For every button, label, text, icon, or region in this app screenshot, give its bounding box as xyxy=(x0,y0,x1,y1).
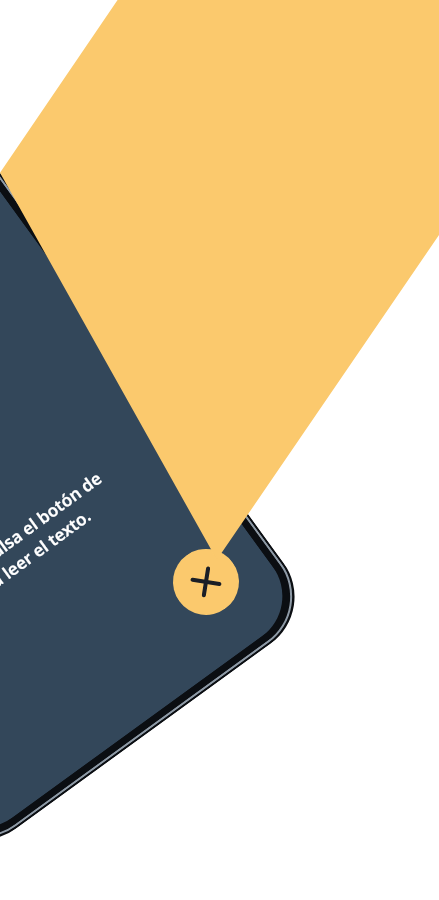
staticText: Toca la pantalla o pulsa el botón de rep… xyxy=(0,467,120,676)
button[interactable]: Banner xyxy=(0,0,439,300)
button[interactable]: Cerrar xyxy=(160,536,252,628)
